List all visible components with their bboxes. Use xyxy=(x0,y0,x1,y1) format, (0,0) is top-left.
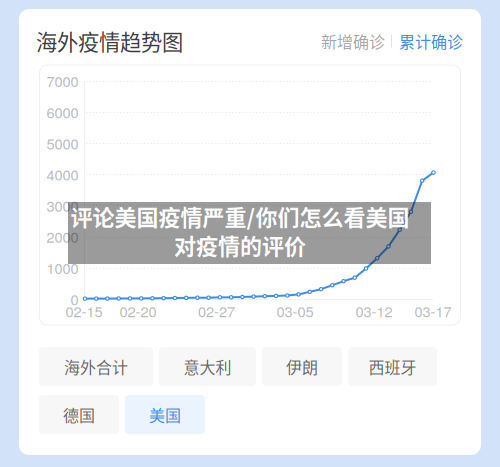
button[interactable]: 德国 xyxy=(39,395,119,434)
button[interactable]: 累计确诊 xyxy=(395,24,467,58)
staticText: 02-27 xyxy=(198,300,235,321)
button[interactable]: 新增确诊 xyxy=(317,24,389,58)
staticText: 西班牙 xyxy=(368,355,416,378)
button[interactable]: 西班牙 xyxy=(348,347,437,386)
button[interactable]: 伊朗 xyxy=(262,347,342,386)
staticText: 4000 xyxy=(46,164,78,185)
staticText: 03-17 xyxy=(414,300,451,321)
staticText: 7000 xyxy=(46,70,78,91)
staticText: 03-05 xyxy=(276,300,313,321)
staticText: 03-12 xyxy=(355,300,392,321)
staticText: 1000 xyxy=(46,257,78,278)
button[interactable]: 美国 xyxy=(125,395,205,434)
staticText: 0 xyxy=(70,288,78,309)
staticText: 意大利 xyxy=(183,355,231,378)
staticText: 3000 xyxy=(46,195,78,216)
staticText: 5000 xyxy=(46,132,78,153)
staticText: 海外疫情趋势图 xyxy=(36,26,183,56)
staticText: 德国 xyxy=(63,403,95,426)
staticText: 评论美国疫情严重/你们怎么看美国 xyxy=(70,200,409,232)
staticText: 累计确诊 xyxy=(399,29,463,53)
staticText: 对疫情的评价 xyxy=(174,229,306,261)
staticText: 美国 xyxy=(149,403,181,426)
staticText: 02-20 xyxy=(119,300,156,321)
staticText: 2000 xyxy=(46,226,78,247)
staticText: 02-15 xyxy=(65,300,102,321)
staticText: 6000 xyxy=(46,101,78,122)
button[interactable]: 意大利 xyxy=(159,347,256,386)
staticText: 海外合计 xyxy=(64,355,128,378)
button[interactable]: 海外合计 xyxy=(39,347,153,386)
staticText: 新增确诊 xyxy=(321,29,385,53)
staticText: 伊朗 xyxy=(286,355,318,378)
